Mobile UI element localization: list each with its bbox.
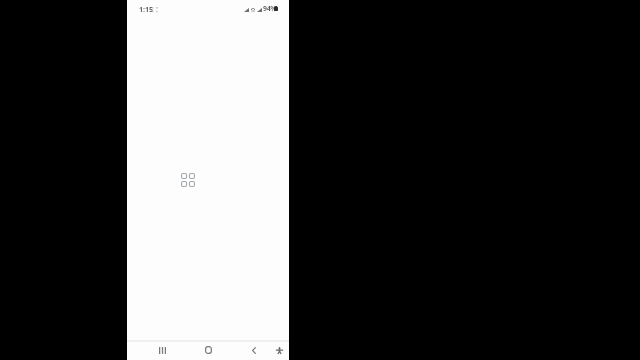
staticText: 94% [263,4,277,13]
button[interactable]: Accessibility [269,340,289,360]
button[interactable]: Back [244,340,264,360]
button[interactable]: Apps grid [181,173,195,187]
staticText: 1:15 [139,4,153,14]
button[interactable]: Recent apps [152,340,172,360]
button[interactable]: Home [198,340,218,360]
